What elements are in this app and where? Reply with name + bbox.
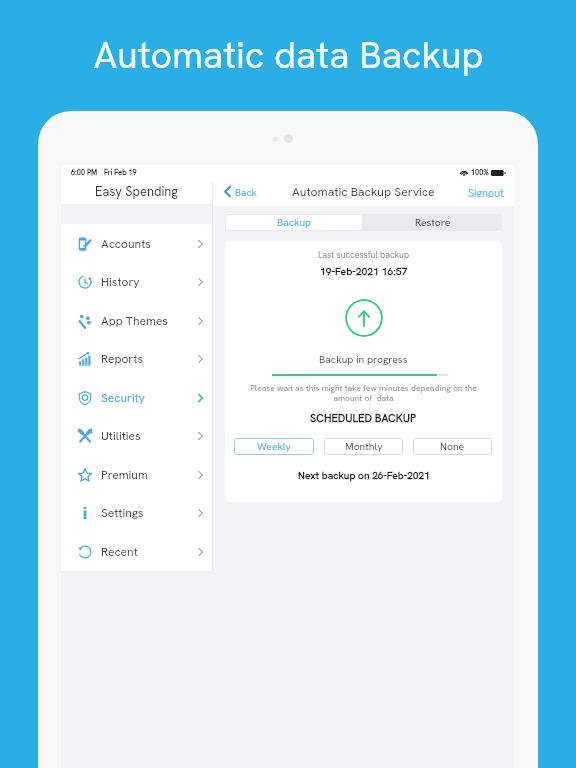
staticText: Easy Spending [95, 183, 178, 200]
staticText: Signout [468, 186, 504, 197]
button[interactable]: Utilities [61, 417, 212, 455]
staticText: 19-Feb-2021 16:57 [320, 265, 408, 279]
button[interactable]: Security [61, 378, 212, 417]
staticText: Last successful backup [318, 249, 410, 260]
button[interactable]: Settings [61, 494, 212, 532]
staticText: Accounts [101, 236, 151, 252]
staticText: Restore [415, 216, 451, 229]
button[interactable]: Monthly [324, 438, 403, 455]
staticText: Please wait as this might take few minut… [250, 382, 477, 404]
button[interactable]: Weekly [234, 438, 314, 455]
staticText: History [101, 274, 140, 290]
button[interactable]: Restore [363, 214, 502, 231]
button[interactable]: None [413, 438, 492, 455]
button[interactable]: Premium [61, 455, 212, 494]
staticText: Utilities [101, 428, 141, 444]
button[interactable]: Backup [226, 215, 362, 230]
staticText: Weekly [257, 440, 291, 453]
staticText: Automatic Backup Service [292, 184, 435, 200]
staticText: Backup in progress [319, 353, 408, 367]
button[interactable]: Accounts [61, 224, 212, 263]
staticText: App Themes [101, 313, 168, 329]
staticText: SCHEDULED BACKUP [310, 411, 417, 425]
staticText: Settings [101, 505, 144, 521]
staticText: Premium [101, 467, 148, 483]
staticText: Reports [101, 351, 144, 367]
button[interactable]: Reports [61, 340, 212, 378]
button[interactable]: Back [221, 181, 260, 202]
button[interactable]: History [61, 263, 212, 301]
button[interactable]: Backup now [345, 299, 383, 337]
staticText: 100% [471, 168, 489, 178]
staticText: None [440, 440, 465, 453]
staticText: Monthly [345, 440, 383, 453]
button[interactable]: Signout [465, 181, 507, 202]
staticText: Backup [277, 216, 312, 229]
staticText: Security [101, 390, 146, 406]
staticText: 6:00 PM [71, 168, 98, 178]
staticText: Automatic data Backup [93, 30, 484, 78]
staticText: Fri Feb 19 [104, 168, 137, 178]
button[interactable]: Recent [61, 532, 212, 571]
button[interactable]: App Themes [61, 301, 212, 340]
staticText: Recent [101, 544, 138, 560]
staticText: Back [235, 186, 257, 197]
staticText: Next backup on 26-Feb-2021 [298, 469, 430, 482]
